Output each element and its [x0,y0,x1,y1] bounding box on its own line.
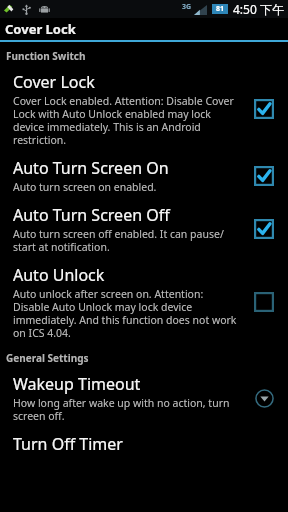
staticText: Auto unlock after screen on. Attention: … [13,287,240,340]
button[interactable]: Auto Unlock [0,259,288,345]
staticText: 81 [216,4,225,14]
button[interactable]: Wakeup Timeout [0,368,288,428]
staticText: Auto Turn Screen On [13,157,169,179]
staticText: Auto Unlock [13,264,105,286]
staticText: How long after wake up with no action, t… [13,396,240,423]
staticText: Auto Turn Screen Off [13,204,170,226]
staticText: Auto turn screen off enabled. It can pau… [13,227,240,254]
staticText: Cover Lock enabled. Attention: Disable C… [13,94,240,147]
button[interactable]: Auto Turn Screen On [0,152,288,199]
staticText: Auto turn screen on enabled. [13,180,157,194]
staticText: Cover Lock [13,71,95,93]
staticText: Cover Lock [5,20,76,38]
button[interactable]: Checked [251,163,277,189]
staticText: Turn Off Timer [13,433,123,455]
staticText: Wakeup Timeout [13,373,141,395]
button[interactable]: Turn Off Timer [0,428,288,460]
staticText: 4:50 下午 [233,1,284,17]
staticText: 3G [182,2,192,12]
button[interactable]: Cover Lock [0,66,288,152]
button[interactable]: Auto Turn Screen Off [0,199,288,259]
staticText: General Settings [6,351,89,365]
button[interactable]: Open list [251,385,277,411]
button[interactable]: Checked [251,96,277,122]
staticText: Function Switch [6,49,86,63]
button[interactable]: Checked [251,216,277,242]
button[interactable]: Unchecked [251,289,277,315]
